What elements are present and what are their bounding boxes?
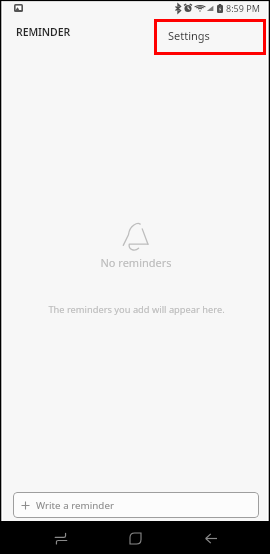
staticText: Write a reminder: [36, 499, 114, 512]
button[interactable]: REMINDER: [16, 25, 71, 39]
staticText: No reminders: [100, 255, 172, 270]
button[interactable]: Recent apps: [46, 523, 76, 553]
staticText: Settings: [168, 28, 210, 43]
button[interactable]: Back: [196, 523, 226, 553]
button[interactable]: Home: [120, 523, 150, 553]
button[interactable]: Settings: [154, 19, 266, 55]
staticText: The reminders you add will appear here.: [48, 303, 225, 316]
button[interactable]: Write a reminder: [13, 492, 259, 518]
staticText: 8:59 PM: [226, 2, 260, 14]
